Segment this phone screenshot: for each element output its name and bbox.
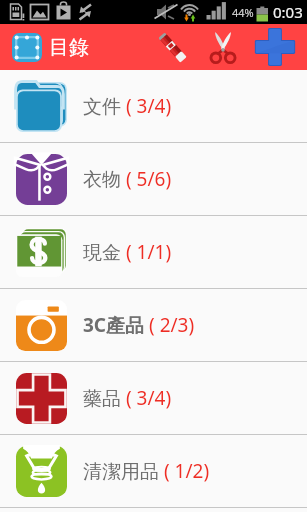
staticText: 目錄 [49,35,89,60]
button[interactable]: 清潔用品 ( 1/2) [0,435,307,507]
button[interactable]: Cut [197,24,249,70]
staticText: 現金 ( 1/1) [83,239,172,265]
button[interactable]: Erase [147,24,197,70]
button[interactable]: 藥品 ( 3/4) [0,362,307,434]
staticText: 文件 ( 3/4) [83,93,172,119]
staticText: 清潔用品 ( 1/2) [83,458,210,484]
staticText: 藥品 ( 3/4) [83,385,172,411]
staticText: 衣物 ( 5/6) [83,166,172,192]
button[interactable]: 衣物 ( 5/6) [0,143,307,215]
button[interactable]: Add [249,24,301,70]
staticText: 0:03 [273,2,303,22]
staticText: 3C產品 ( 2/3) [83,312,195,338]
button[interactable]: 文件 ( 3/4) [0,70,307,142]
staticText: 44% [232,5,254,20]
button[interactable]: 現金 ( 1/1) [0,216,307,288]
button[interactable]: 3C產品 ( 2/3) [0,289,307,361]
